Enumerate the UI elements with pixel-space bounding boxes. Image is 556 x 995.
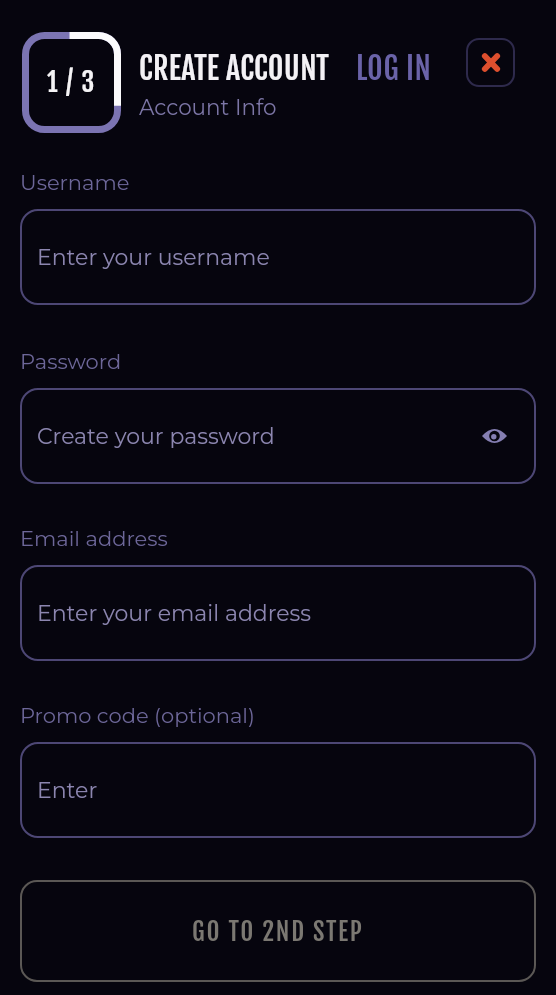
staticText: Username bbox=[20, 170, 130, 196]
staticText: CREATE ACCOUNT bbox=[139, 50, 330, 88]
button[interactable]: Enter your username bbox=[20, 209, 536, 305]
staticText: Promo code (optional) bbox=[20, 703, 255, 729]
button[interactable]: GO TO 2ND STEP bbox=[20, 880, 536, 982]
button[interactable]: Enter bbox=[20, 742, 536, 838]
button[interactable]: LOG IN bbox=[356, 50, 432, 88]
staticText: Account Info bbox=[139, 94, 277, 120]
button[interactable] bbox=[466, 38, 515, 87]
button[interactable]: Create your password bbox=[20, 388, 536, 484]
staticText: LOG IN bbox=[356, 50, 432, 88]
staticText: Enter your email address bbox=[37, 600, 312, 627]
staticText: 1 / 3 bbox=[47, 66, 96, 99]
staticText: Create your password bbox=[37, 423, 275, 450]
staticText: GO TO 2ND STEP bbox=[192, 916, 364, 947]
button[interactable] bbox=[477, 419, 511, 453]
staticText: Email address bbox=[20, 526, 168, 552]
button[interactable]: Enter your email address bbox=[20, 565, 536, 661]
staticText: Enter your username bbox=[37, 244, 270, 271]
staticText: Enter bbox=[37, 777, 98, 804]
staticText: Password bbox=[20, 349, 122, 375]
